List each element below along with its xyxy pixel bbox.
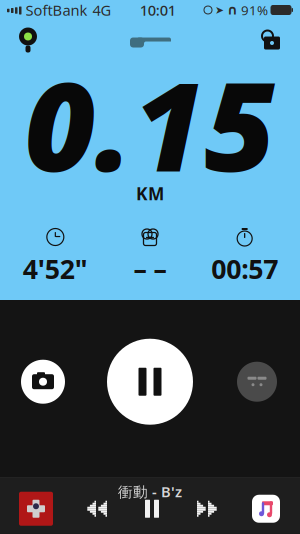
staticText: 10:01: [140, 0, 176, 20]
button[interactable]: Take a photo: [12, 337, 74, 427]
button[interactable]: Open Apple Music: [240, 483, 292, 534]
staticText: ➤: [215, 4, 224, 16]
button[interactable]: Next track: [184, 486, 230, 532]
button[interactable]: Lock screen: [250, 23, 294, 57]
staticText: 0.15: [24, 43, 275, 205]
staticText: ∩: [227, 2, 238, 17]
staticText: SoftBank: [25, 0, 87, 20]
staticText: 4'52": [23, 251, 88, 286]
button[interactable]: Pause run: [105, 337, 195, 427]
staticText: KM: [136, 182, 164, 205]
button[interactable]: More options: [226, 337, 288, 427]
staticText: 衝動 - B'z: [118, 482, 182, 501]
staticText: 91%: [241, 1, 268, 19]
button[interactable]: Previous track: [73, 486, 119, 532]
staticText: 00:57: [211, 251, 278, 286]
button[interactable]: GPS signal: [6, 23, 50, 57]
button[interactable]: Now playing artwork: [8, 481, 64, 534]
button[interactable]: Pause music: [129, 486, 175, 532]
staticText: – –: [133, 251, 166, 286]
staticText: 4G: [92, 0, 111, 20]
